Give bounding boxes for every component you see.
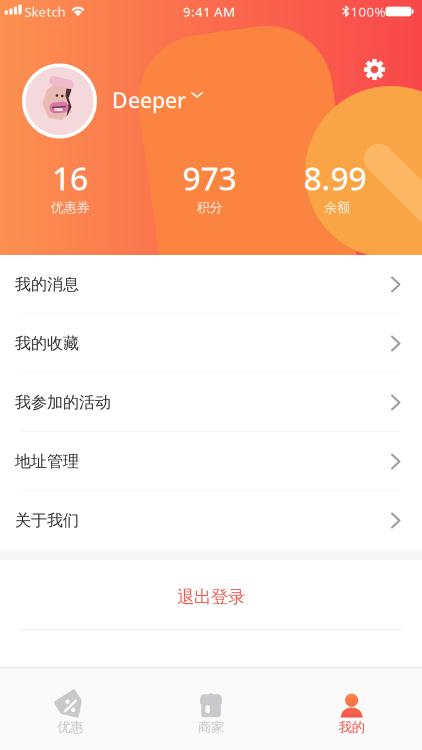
staticText: 优惠券 — [50, 199, 89, 216]
button[interactable]: Deeper — [112, 86, 282, 114]
button[interactable]: 关于我们 — [0, 491, 422, 550]
button[interactable]: Settings — [364, 59, 385, 80]
staticText: 余额 — [324, 199, 350, 216]
button[interactable]: 我的消息 — [0, 255, 422, 314]
staticText: 关于我们 — [15, 511, 79, 530]
staticText: 我的 — [339, 719, 365, 735]
staticText: 我的消息 — [15, 275, 79, 294]
staticText: Sketch — [24, 3, 65, 20]
staticText: 积分 — [196, 199, 222, 216]
button[interactable]: 我的 — [281, 667, 422, 750]
staticText: 我的收藏 — [15, 334, 79, 353]
button[interactable]: 退出登录 — [0, 560, 422, 630]
staticText: 商家 — [198, 719, 224, 735]
button[interactable]: 我的收藏 — [0, 314, 422, 373]
button[interactable]: 地址管理 — [0, 432, 422, 491]
staticText: 优惠 — [57, 719, 83, 735]
button[interactable]: 优惠 — [0, 667, 141, 750]
button[interactable]: 商家 — [141, 667, 281, 750]
staticText: 16 — [52, 157, 88, 199]
staticText: 973 — [182, 157, 236, 199]
button[interactable]: 我参加的活动 — [0, 373, 422, 432]
staticText: 9:41 AM — [183, 3, 235, 20]
staticText: 退出登录 — [177, 586, 245, 608]
staticText: 我参加的活动 — [15, 393, 111, 412]
staticText: 100% — [350, 3, 385, 20]
staticText: 8.99 — [303, 157, 366, 199]
staticText: 地址管理 — [15, 452, 79, 471]
staticText: Deeper — [112, 86, 186, 114]
